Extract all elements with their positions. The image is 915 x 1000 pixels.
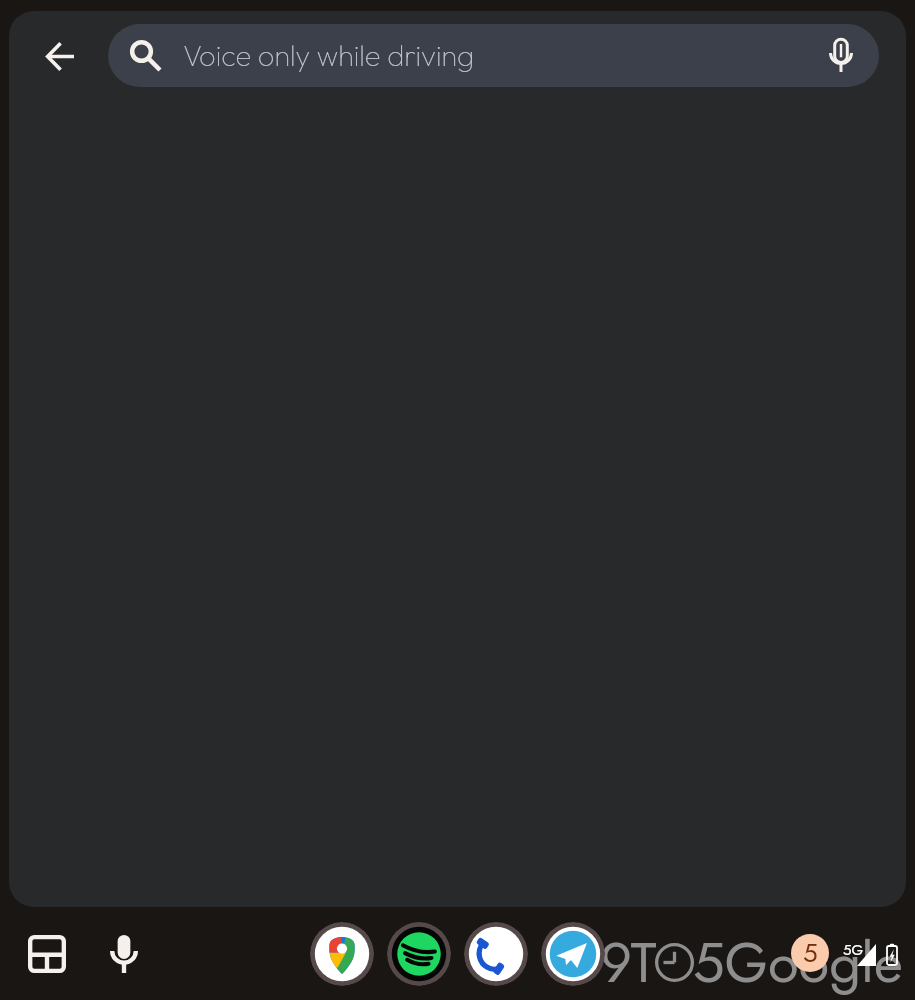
button[interactable]: Back <box>32 29 87 84</box>
button[interactable]: Telegram <box>541 922 605 986</box>
button[interactable]: Google Maps <box>310 922 374 986</box>
button[interactable]: App launcher <box>21 928 73 980</box>
button[interactable]: Phone <box>464 922 528 986</box>
button[interactable]: Voice only while driving <box>108 24 879 87</box>
staticText: Voice only while driving <box>183 37 475 74</box>
button[interactable]: Notifications <box>791 934 829 972</box>
staticText: 5 <box>803 934 818 972</box>
button[interactable]: Assistant <box>98 928 150 980</box>
staticText: 5G <box>843 939 864 961</box>
staticText: 5Google <box>693 922 903 1000</box>
button[interactable]: Spotify <box>387 922 451 986</box>
staticText: 9T <box>600 922 657 1000</box>
